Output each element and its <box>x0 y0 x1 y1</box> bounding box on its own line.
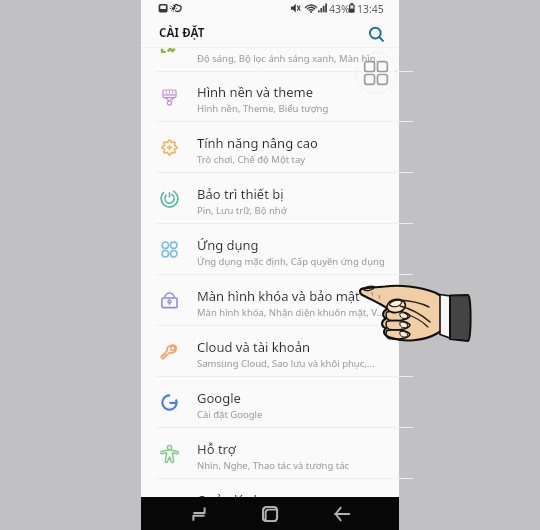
staticText: Quản lý chung <box>197 491 286 509</box>
staticText: Ứng dụng <box>197 236 259 254</box>
button[interactable]: App grid <box>355 52 397 94</box>
staticText: Màn hình khóa và bảo mật <box>197 287 360 305</box>
staticText: Bảo trì thiết bị <box>197 185 284 203</box>
staticText: Tính năng nâng cao <box>197 134 318 152</box>
button[interactable]: Hình nền và theme <box>141 71 399 122</box>
staticText: Hình nền và theme <box>197 83 314 101</box>
button[interactable]: Search <box>363 21 387 45</box>
button[interactable]: Hỗ trợ <box>141 428 399 479</box>
staticText: Cài đặt Google <box>197 408 263 421</box>
button[interactable]: Bảo trì thiết bị <box>141 173 399 224</box>
staticText: 13:45 <box>357 2 384 16</box>
staticText: 43% <box>329 2 350 16</box>
staticText: Google <box>197 389 241 407</box>
button[interactable]: Tính năng nâng cao <box>141 122 399 173</box>
staticText: Hình nền, Theme, Biểu tượng <box>197 102 329 115</box>
staticText: Hỗ trợ <box>197 440 236 458</box>
staticText: Ứng dụng mặc định, Cấp quyền ứng dụng <box>197 255 385 268</box>
staticText: Màn hình khóa, Nhận diện khuôn mặt, V... <box>197 306 385 319</box>
staticText: Cloud và tài khoản <box>197 338 311 356</box>
button[interactable]: Home <box>256 500 284 528</box>
staticText: Samsung Cloud, Sao lưu và khôi phục,... <box>197 357 375 370</box>
staticText: Nhìn, Nghe, Thao tác và tương tác <box>197 459 350 472</box>
button[interactable]: Recent apps <box>185 500 213 528</box>
button[interactable]: Ứng dụng <box>141 224 399 275</box>
staticText: Pin, Lưu trữ, Bộ nhớ <box>197 204 287 217</box>
button[interactable]: Google <box>141 377 399 428</box>
staticText: Trò chơi, Chế độ Một tay <box>197 153 306 166</box>
button[interactable]: Back <box>328 500 356 528</box>
staticText: CÀI ĐẶT <box>159 25 205 41</box>
staticText: Độ sáng, Bộ lọc ánh sáng xanh, Màn hìn..… <box>197 52 387 65</box>
button[interactable]: Cloud và tài khoản <box>141 326 399 377</box>
button[interactable]: Màn hình khóa và bảo mật <box>141 275 399 326</box>
